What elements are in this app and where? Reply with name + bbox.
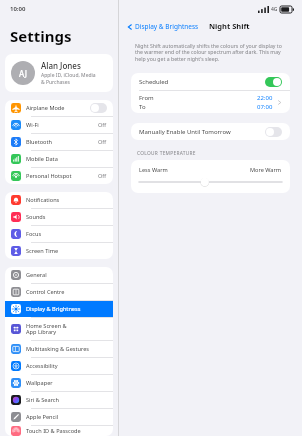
staticText: Touch ID & Passcode bbox=[26, 427, 107, 435]
staticText: Control Centre bbox=[26, 288, 107, 296]
button[interactable]: Personal Hotspot bbox=[5, 168, 113, 184]
staticText: 22:00 bbox=[257, 94, 273, 102]
staticText: Display & Brightness bbox=[26, 305, 107, 313]
staticText: Screen Time bbox=[26, 247, 107, 255]
staticText: Multitasking & Gestures bbox=[26, 345, 107, 353]
staticText: Sounds bbox=[26, 213, 107, 221]
staticText: COLOUR TEMPERATURE bbox=[137, 150, 196, 157]
button[interactable]: Toggle on bbox=[265, 77, 282, 87]
button[interactable]: From bbox=[131, 91, 290, 113]
staticText: 07:00 bbox=[257, 103, 273, 111]
button[interactable]: Home Screen & App Library bbox=[5, 318, 113, 340]
staticText: Apple ID, iCloud, Media & Purchases bbox=[41, 72, 96, 86]
button[interactable]: Wallpaper bbox=[5, 375, 113, 391]
button[interactable]: General bbox=[5, 267, 113, 283]
button[interactable]: Bluetooth bbox=[5, 134, 113, 150]
button[interactable]: Screen Time bbox=[5, 243, 113, 259]
staticText: Apple Pencil bbox=[26, 413, 107, 421]
button[interactable]: Wi-Fi bbox=[5, 117, 113, 133]
staticText: Home Screen & App Library bbox=[26, 322, 107, 336]
staticText: More Warm bbox=[250, 166, 282, 174]
staticText: Night Shift bbox=[209, 21, 250, 31]
button[interactable]: Airplane Mode bbox=[5, 100, 113, 116]
staticText: AJ bbox=[19, 68, 27, 79]
staticText: Bluetooth bbox=[26, 138, 98, 146]
button[interactable]: Apple Pencil bbox=[5, 409, 113, 425]
staticText: Off bbox=[98, 138, 107, 146]
staticText: Alan Jones bbox=[41, 60, 81, 71]
staticText: Off bbox=[98, 121, 107, 129]
button[interactable]: Mobile Data bbox=[5, 151, 113, 167]
staticText: Scheduled bbox=[139, 78, 265, 86]
button[interactable]: Siri & Search bbox=[5, 392, 113, 408]
staticText: Off bbox=[98, 172, 107, 180]
button[interactable]: Display & Brightness bbox=[5, 301, 113, 317]
button[interactable]: Manually Enable Until Tomorrow bbox=[131, 123, 290, 140]
button[interactable]: Colour temperature slider bbox=[139, 177, 282, 187]
staticText: Settings bbox=[10, 26, 72, 46]
staticText: Focus bbox=[26, 230, 107, 238]
staticText: 4G bbox=[271, 6, 278, 13]
staticText: Accessibility bbox=[26, 362, 107, 370]
staticText: From bbox=[139, 94, 154, 102]
staticText: Mobile Data bbox=[26, 155, 107, 163]
staticText: Wallpaper bbox=[26, 379, 107, 387]
button[interactable]: Notifications bbox=[5, 192, 113, 208]
button[interactable]: Toggle off bbox=[265, 127, 282, 137]
button[interactable]: AJ bbox=[5, 54, 113, 92]
staticText: Wi-Fi bbox=[26, 121, 98, 129]
staticText: Siri & Search bbox=[26, 396, 107, 404]
button[interactable]: Control Centre bbox=[5, 284, 113, 300]
button[interactable]: Toggle off bbox=[90, 103, 107, 113]
button[interactable]: Multitasking & Gestures bbox=[5, 341, 113, 357]
staticText: Personal Hotspot bbox=[26, 172, 98, 180]
staticText: 10:00 bbox=[10, 5, 26, 13]
staticText: Manually Enable Until Tomorrow bbox=[139, 128, 265, 136]
staticText: To bbox=[139, 103, 146, 111]
staticText: Display & Brightness bbox=[135, 22, 199, 31]
button[interactable]: Display & Brightness bbox=[125, 20, 201, 33]
staticText: Notifications bbox=[26, 196, 107, 204]
button[interactable]: Focus bbox=[5, 226, 113, 242]
staticText: Less Warm bbox=[139, 166, 168, 174]
staticText: Night Shift automatically shifts the col… bbox=[135, 42, 286, 63]
staticText: Airplane Mode bbox=[26, 104, 90, 112]
button[interactable]: Accessibility bbox=[5, 358, 113, 374]
staticText: General bbox=[26, 271, 107, 279]
button[interactable]: Touch ID & Passcode bbox=[5, 426, 113, 436]
button[interactable]: Sounds bbox=[5, 209, 113, 225]
button[interactable]: Scheduled bbox=[131, 73, 290, 90]
